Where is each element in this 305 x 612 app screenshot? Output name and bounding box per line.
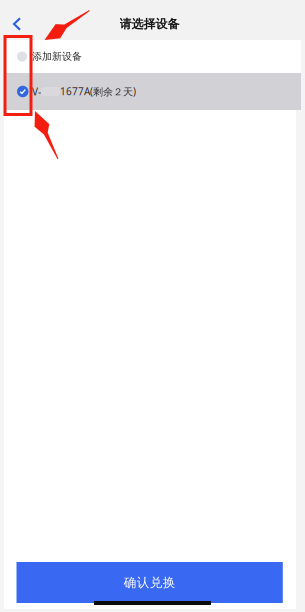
button[interactable]: 确认兑换 — [16, 562, 283, 603]
button[interactable]: 添加新设备 — [4, 40, 301, 73]
staticText: V- — [32, 85, 41, 98]
staticText: 确认兑换 — [124, 575, 176, 590]
button[interactable]: Back — [4, 11, 30, 37]
staticText: 添加新设备 — [32, 50, 82, 63]
staticText: 1677A(剩余２天) — [60, 85, 136, 98]
button[interactable]: V- — [4, 73, 301, 110]
staticText: 请选择设备 — [119, 16, 179, 31]
